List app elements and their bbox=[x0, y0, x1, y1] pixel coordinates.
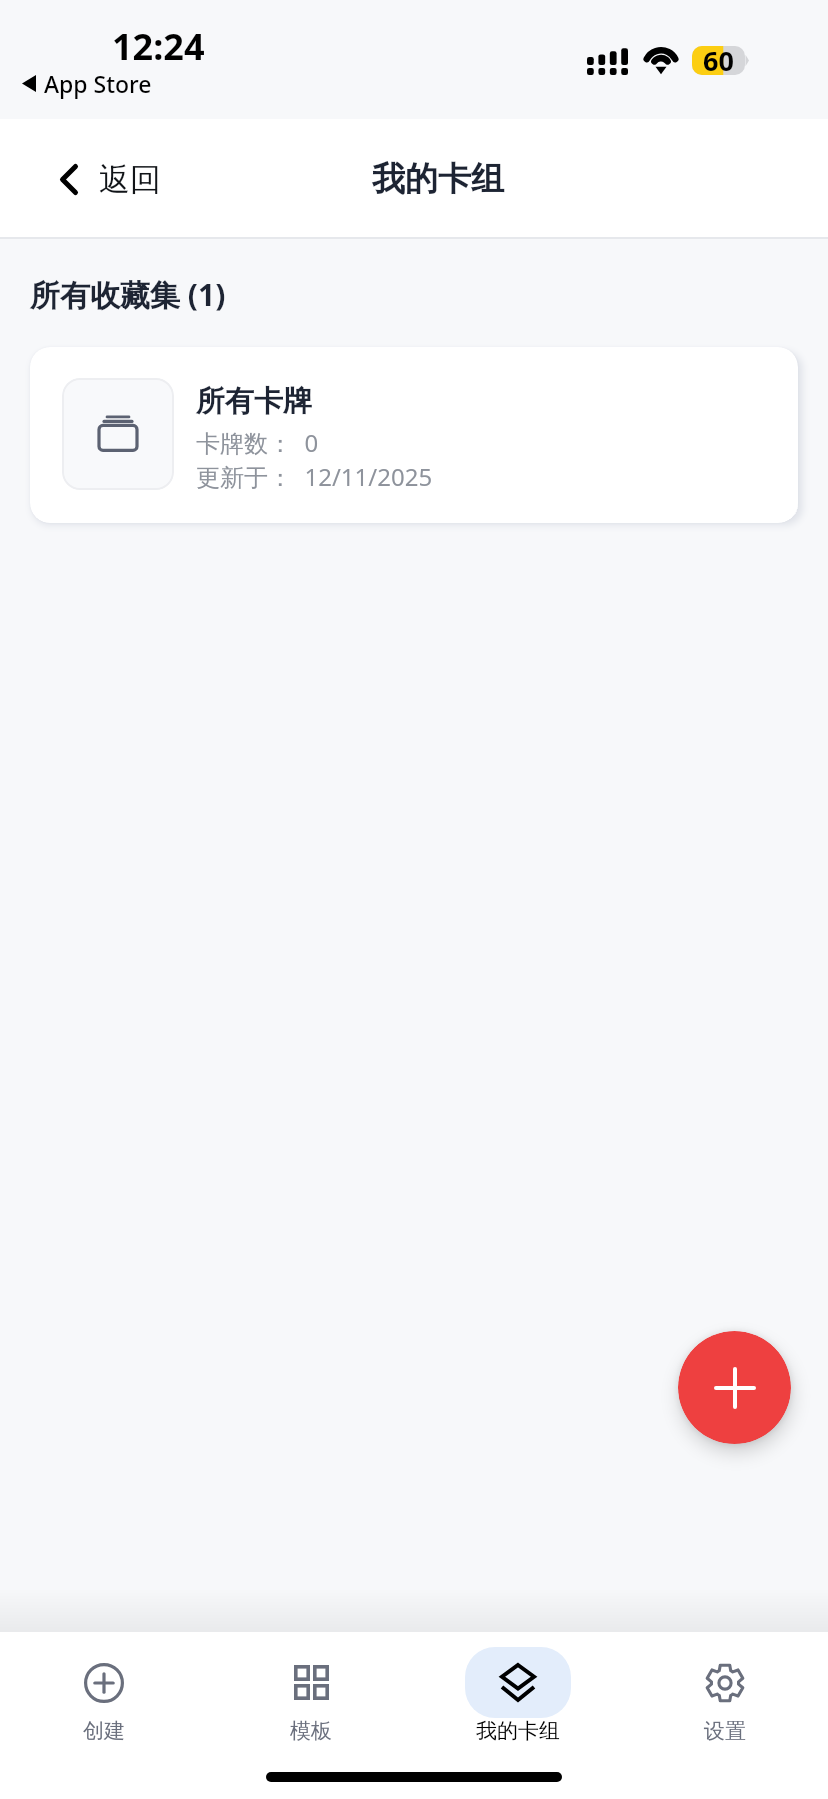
staticText: 我的卡组 bbox=[372, 158, 504, 200]
staticText: 创建 bbox=[83, 1718, 125, 1744]
other: Battery 60 percent bbox=[692, 46, 750, 75]
staticText: 模板 bbox=[290, 1718, 332, 1744]
staticText: 12:24 bbox=[112, 22, 205, 71]
button[interactable]: 设置 bbox=[621, 1632, 828, 1756]
other: Wi-Fi bbox=[643, 47, 679, 74]
staticText: App Store bbox=[44, 68, 152, 99]
staticText: 设置 bbox=[704, 1718, 746, 1744]
button[interactable]: 创建 bbox=[0, 1632, 207, 1756]
staticText: 返回 bbox=[99, 160, 161, 199]
staticText: 我的卡组 bbox=[476, 1718, 560, 1744]
staticText: 所有收藏集 (1) bbox=[30, 274, 226, 315]
button[interactable]: 模板 bbox=[207, 1632, 414, 1756]
button[interactable]: Add bbox=[678, 1331, 791, 1444]
button[interactable]: App Store bbox=[22, 68, 152, 99]
staticText: 更新于： 12/11/2025 bbox=[196, 460, 433, 493]
staticText: 60 bbox=[703, 42, 734, 71]
staticText: 所有卡牌 bbox=[196, 383, 312, 420]
other: Cellular signal bbox=[587, 47, 628, 75]
staticText: 卡牌数： 0 bbox=[196, 426, 319, 459]
button[interactable]: 我的卡组 bbox=[414, 1632, 621, 1756]
button[interactable]: 返回 bbox=[50, 146, 171, 213]
button[interactable]: 所有卡牌 bbox=[30, 347, 798, 523]
